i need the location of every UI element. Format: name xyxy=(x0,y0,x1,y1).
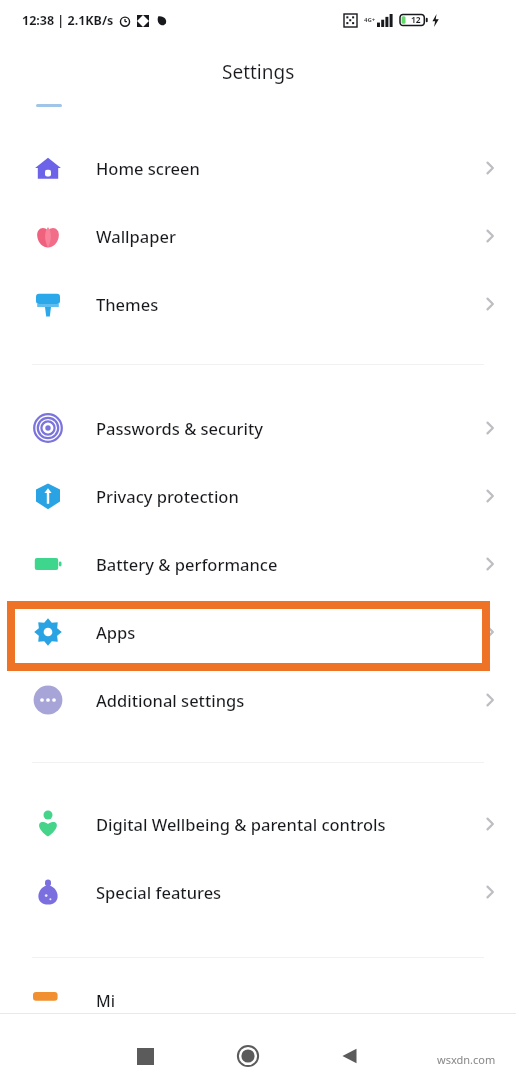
staticText: Additional settings xyxy=(96,689,464,711)
staticText: Privacy protection xyxy=(96,485,464,507)
button[interactable]: Apps xyxy=(0,602,516,662)
button[interactable]: Home xyxy=(225,1033,271,1075)
button[interactable]: Privacy protection xyxy=(0,466,516,526)
staticText: Mi xyxy=(96,990,116,1012)
button[interactable]: Passwords & security xyxy=(0,398,516,458)
staticText: 12:38 | 2.1KB/s xyxy=(22,12,114,29)
staticText: Settings xyxy=(222,59,295,85)
button[interactable]: Back xyxy=(327,1033,373,1075)
staticText: Themes xyxy=(96,293,464,315)
staticText: wsxdn.com xyxy=(437,1052,496,1067)
button[interactable]: Themes xyxy=(0,274,516,334)
button[interactable]: Digital Wellbeing & parental controls xyxy=(0,794,516,854)
button[interactable]: Recent apps xyxy=(122,1033,168,1075)
staticText: Apps xyxy=(96,621,464,643)
staticText: Passwords & security xyxy=(96,417,464,439)
button[interactable]: Special features xyxy=(0,862,516,922)
staticText: Home screen xyxy=(96,157,464,179)
staticText: 4G+ xyxy=(364,16,376,24)
button[interactable]: Wallpaper xyxy=(0,206,516,266)
button[interactable]: Battery & performance xyxy=(0,534,516,594)
button[interactable]: Additional settings xyxy=(0,670,516,730)
button[interactable]: Mi xyxy=(0,990,516,1012)
staticText: Wallpaper xyxy=(96,225,464,247)
staticText: Special features xyxy=(96,881,464,903)
staticText: Digital Wellbeing & parental controls xyxy=(96,813,464,835)
button[interactable]: Home screen xyxy=(0,138,516,198)
staticText: 12 xyxy=(411,14,421,26)
staticText: Battery & performance xyxy=(96,553,464,575)
